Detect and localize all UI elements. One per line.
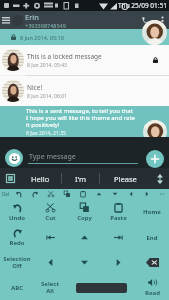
- staticText: 8 Jun 2014, 05:10: [20, 34, 64, 41]
- button[interactable]: Right: [139, 189, 155, 199]
- staticText: 8 Jun 2014, 21:35: [26, 130, 66, 137]
- button[interactable]: Select All: [33, 275, 67, 300]
- button[interactable]: Down: [67, 250, 101, 275]
- button[interactable]: Left: [123, 189, 139, 199]
- button[interactable]: Selection Off: [0, 250, 33, 275]
- button[interactable]: Home: [135, 199, 169, 225]
- button[interactable]: Hello: [20, 168, 61, 189]
- button[interactable]: Menu: [0, 11, 12, 29]
- button[interactable]: Redo: [0, 225, 33, 250]
- button[interactable]: Left: [33, 250, 67, 275]
- staticText: Erin: [25, 12, 39, 22]
- staticText: Type message: [29, 152, 76, 162]
- button[interactable]: Paste: [101, 199, 135, 225]
- button[interactable]: Space: [67, 275, 135, 300]
- button[interactable]: Please: [100, 168, 151, 189]
- button[interactable]: Line start: [33, 225, 67, 250]
- button[interactable]: Add attachment: [146, 150, 164, 168]
- staticText: Please: [114, 174, 137, 184]
- button[interactable]: Cut: [33, 199, 67, 225]
- button[interactable]: Expand suggestions: [151, 168, 169, 189]
- staticText: Hello: [31, 174, 50, 184]
- button[interactable]: Keyboard layouts: [0, 168, 20, 189]
- staticText: This is a sent message, to tell you that…: [26, 107, 135, 129]
- button[interactable]: Paste: [75, 189, 91, 199]
- staticText: End: [146, 234, 158, 242]
- staticText: Undo: [9, 214, 25, 222]
- staticText: Redo: [9, 239, 25, 247]
- staticText: This is a locked message: [27, 52, 102, 61]
- button[interactable]: This is a locked message: [0, 45, 169, 75]
- button[interactable]: Up: [67, 225, 101, 250]
- button[interactable]: Up: [91, 189, 107, 199]
- button[interactable]: More options: [155, 11, 169, 29]
- staticText: Home: [143, 208, 161, 216]
- staticText: Thu 25/09 01:51: [118, 1, 167, 10]
- button[interactable]: Read: [135, 275, 169, 300]
- staticText: Read: [145, 289, 160, 297]
- button[interactable]: Down: [107, 189, 123, 199]
- button[interactable]: Line end: [101, 225, 135, 250]
- button[interactable]: Redo: [27, 189, 43, 199]
- button[interactable]: Nice!: [0, 76, 169, 106]
- staticText: Paste: [110, 214, 127, 222]
- button[interactable]: Emoji: [5, 149, 23, 167]
- button[interactable]: More options: [155, 189, 169, 199]
- button[interactable]: Copy: [59, 189, 75, 199]
- button[interactable]: Del: [0, 189, 11, 199]
- button[interactable]: Call: [135, 11, 155, 29]
- button[interactable]: Undo: [0, 199, 33, 225]
- button[interactable]: Right: [101, 250, 135, 275]
- button[interactable]: Backspace: [135, 250, 169, 275]
- staticText: I'm: [75, 174, 87, 184]
- staticText: 8 Jun 2014, 06:01: [27, 93, 67, 100]
- button[interactable]: Undo: [11, 189, 27, 199]
- staticText: 8 Jun 2014, 05:43: [27, 62, 67, 69]
- staticText: Nice!: [27, 83, 43, 92]
- staticText: Copy: [77, 214, 92, 222]
- button[interactable]: ABC: [0, 275, 33, 300]
- button[interactable]: Copy: [67, 199, 101, 225]
- button[interactable]: Cut: [43, 189, 59, 199]
- staticText: Del: [2, 191, 9, 197]
- button[interactable]: This is a sent message, to tell you that…: [0, 106, 169, 137]
- staticText: ABC: [11, 284, 23, 292]
- staticText: Select All: [41, 280, 59, 295]
- button[interactable]: I'm: [62, 168, 99, 189]
- staticText: Selection Off: [3, 255, 31, 270]
- button[interactable]: End: [135, 225, 169, 250]
- staticText: Cut: [45, 214, 56, 222]
- staticText: +393398748549: [25, 22, 66, 29]
